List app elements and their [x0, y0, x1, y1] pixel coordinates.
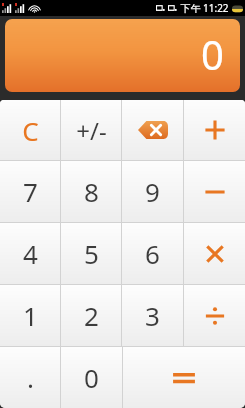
- button[interactable]: 5: [61, 223, 121, 284]
- staticText: 5: [84, 236, 99, 271]
- staticText: +/-: [76, 114, 107, 147]
- button[interactable]: 1: [0, 285, 60, 346]
- staticText: 7: [23, 174, 38, 209]
- staticText: 4: [23, 236, 38, 271]
- staticText: 1: [23, 298, 38, 333]
- button[interactable]: Minus: [184, 161, 245, 222]
- staticText: .: [27, 360, 34, 395]
- staticText: 9: [145, 174, 160, 209]
- button[interactable]: 6: [122, 223, 183, 284]
- button[interactable]: C: [0, 100, 60, 160]
- staticText: C: [22, 113, 39, 148]
- button[interactable]: 3: [122, 285, 183, 346]
- button[interactable]: 4: [0, 223, 60, 284]
- staticText: 8: [84, 174, 99, 209]
- button[interactable]: 8: [61, 161, 121, 222]
- staticText: 3: [145, 298, 160, 333]
- staticText: 2: [84, 298, 99, 333]
- button[interactable]: Divide: [184, 285, 245, 346]
- staticText: 0: [201, 27, 224, 81]
- staticText: 6: [145, 236, 160, 271]
- staticText: 下午 11:22: [180, 1, 229, 15]
- button[interactable]: 0: [61, 347, 122, 408]
- button[interactable]: Multiply: [184, 223, 245, 284]
- button[interactable]: Equals: [123, 347, 245, 408]
- staticText: 0: [84, 360, 99, 395]
- button[interactable]: Backspace: [122, 100, 183, 160]
- button[interactable]: 7: [0, 161, 60, 222]
- button[interactable]: Plus: [184, 100, 245, 160]
- button[interactable]: 9: [122, 161, 183, 222]
- button[interactable]: +/-: [61, 100, 121, 160]
- button[interactable]: 2: [61, 285, 121, 346]
- button[interactable]: .: [0, 347, 60, 408]
